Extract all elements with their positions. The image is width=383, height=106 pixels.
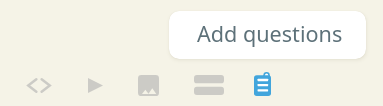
button[interactable]: Add questions <box>169 11 366 59</box>
button[interactable]: Image <box>130 67 166 103</box>
button[interactable]: Code <box>21 67 57 103</box>
staticText: Add questions <box>197 19 343 48</box>
button[interactable]: List <box>191 67 227 103</box>
button[interactable]: Form <box>244 66 280 102</box>
button[interactable]: Play <box>77 67 113 103</box>
